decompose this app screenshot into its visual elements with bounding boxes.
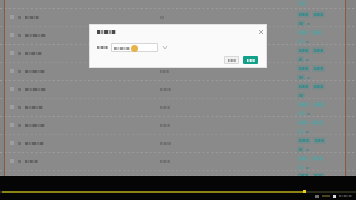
button[interactable]: Row action <box>297 56 304 63</box>
button[interactable]: Row action <box>297 155 309 162</box>
button[interactable]: Row action <box>311 119 324 126</box>
button[interactable]: Row action <box>297 146 304 153</box>
button[interactable]: Row action <box>297 173 310 178</box>
button[interactable]: Row action <box>297 119 309 126</box>
button[interactable]: Row action <box>297 83 310 90</box>
button[interactable]: Row action <box>0 63 356 80</box>
button[interactable]: Row action <box>0 27 356 44</box>
button[interactable]: Row action <box>0 0 356 8</box>
button[interactable]: Row action <box>312 101 326 108</box>
button[interactable]: Row action <box>297 11 310 18</box>
button[interactable]: Row action <box>0 99 356 116</box>
button[interactable]: Row action <box>297 92 305 99</box>
button[interactable]: Row action <box>297 137 311 144</box>
button[interactable]: Row action <box>297 0 307 7</box>
button[interactable] <box>225 57 238 63</box>
button[interactable]: Close <box>258 29 264 35</box>
button[interactable]: Row action <box>297 101 310 108</box>
button[interactable] <box>243 56 258 64</box>
button[interactable]: Row action <box>297 128 304 135</box>
button[interactable]: Row action <box>297 29 309 36</box>
button[interactable]: Row action <box>297 164 304 171</box>
button[interactable]: Row action <box>312 83 325 90</box>
button[interactable]: Row action <box>0 171 356 176</box>
button[interactable]: Select value <box>112 44 157 51</box>
button[interactable]: Row action <box>297 65 310 72</box>
button[interactable]: Row action <box>297 110 305 117</box>
button[interactable]: Row action <box>0 135 356 152</box>
button[interactable]: Row action <box>297 74 305 81</box>
button[interactable]: Row action <box>312 47 325 54</box>
button[interactable]: Row action <box>311 29 323 36</box>
button[interactable]: Row action <box>311 155 324 162</box>
button[interactable]: Row action <box>312 173 325 178</box>
button[interactable]: Row action <box>312 11 325 18</box>
button[interactable]: Row action <box>0 9 356 26</box>
button[interactable]: Row action <box>0 117 356 134</box>
button[interactable]: Row action <box>297 20 305 27</box>
button[interactable]: Row action <box>297 47 310 54</box>
button[interactable]: Row action <box>0 153 356 170</box>
button[interactable]: Row action <box>313 137 326 144</box>
button[interactable]: Row action <box>312 65 325 72</box>
button[interactable]: Row action <box>0 45 356 62</box>
button[interactable]: Row action <box>297 38 304 45</box>
button[interactable]: Row action <box>0 81 356 98</box>
